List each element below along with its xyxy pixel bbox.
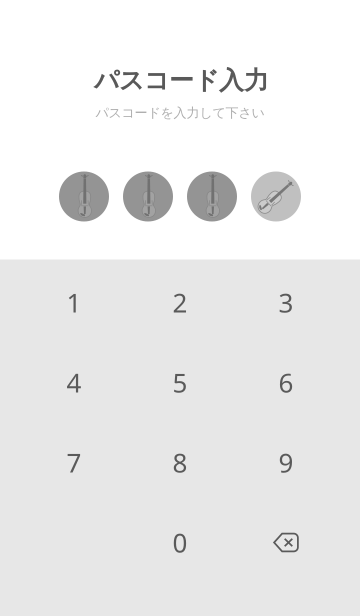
button[interactable]: 1 (21, 262, 127, 342)
staticText: 7 (66, 445, 81, 480)
button[interactable]: 7 (21, 422, 127, 502)
staticText: パスコード入力 (94, 65, 269, 96)
staticText: 1 (66, 285, 81, 320)
staticText: 4 (66, 365, 81, 400)
staticText: 0 (172, 525, 187, 560)
staticText: 3 (278, 285, 293, 320)
staticText: パスコードを入力して下さい (95, 105, 264, 121)
button[interactable]: 6 (233, 342, 339, 422)
staticText: 5 (172, 365, 187, 400)
button[interactable]: 5 (127, 342, 233, 422)
button[interactable]: 2 (127, 262, 233, 342)
staticText: 9 (278, 445, 293, 480)
button[interactable]: 0 (127, 502, 233, 582)
button[interactable]: 4 (21, 342, 127, 422)
staticText: 2 (172, 285, 187, 320)
button[interactable]: 8 (127, 422, 233, 502)
staticText: 6 (278, 365, 293, 400)
staticText: 8 (172, 445, 187, 480)
button[interactable]: 3 (233, 262, 339, 342)
button[interactable]: 9 (233, 422, 339, 502)
button[interactable]: Delete (233, 502, 339, 582)
